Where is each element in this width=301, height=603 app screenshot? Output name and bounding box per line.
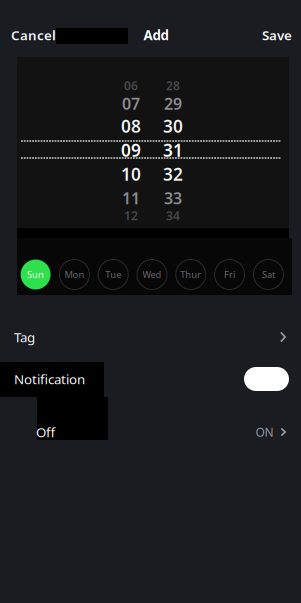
staticText: Tag: [14, 328, 35, 346]
staticText: ON: [255, 424, 273, 440]
staticText: 09: [121, 138, 141, 161]
button[interactable]: Wed: [132, 257, 171, 291]
staticText: Thur: [180, 268, 201, 281]
staticText: 07: [122, 93, 140, 114]
staticText: Cancel: [11, 26, 56, 44]
button[interactable]: Sat: [249, 257, 288, 291]
staticText: 34: [166, 207, 180, 223]
staticText: Wed: [142, 268, 161, 281]
staticText: 12: [124, 207, 138, 223]
staticText: 30: [163, 114, 183, 137]
button[interactable]: Notification: [244, 367, 289, 391]
button[interactable]: Tue: [94, 257, 133, 291]
button[interactable]: Cancel: [0, 24, 66, 46]
button[interactable]: Off: [0, 412, 301, 452]
staticText: Add: [143, 26, 168, 44]
staticText: 29: [164, 93, 182, 114]
staticText: 32: [163, 162, 183, 185]
staticText: 06: [124, 77, 138, 93]
staticText: 28: [166, 77, 180, 93]
button[interactable]: Sun: [16, 257, 55, 291]
staticText: 33: [164, 187, 182, 209]
button[interactable]: Tag: [0, 318, 301, 356]
staticText: Sat: [262, 268, 275, 281]
staticText: Tue: [105, 268, 121, 281]
staticText: Off: [36, 423, 55, 441]
staticText: 31: [163, 138, 183, 161]
staticText: 10: [121, 162, 141, 185]
staticText: Save: [262, 26, 292, 44]
button[interactable]: Thur: [171, 257, 210, 291]
staticText: Mon: [64, 268, 84, 281]
button[interactable]: Mon: [55, 257, 94, 291]
button[interactable]: Fri: [210, 257, 249, 291]
staticText: Sun: [27, 268, 44, 281]
staticText: Fri: [224, 268, 235, 281]
staticText: Notification: [14, 370, 85, 388]
button[interactable]: Save: [252, 24, 301, 46]
staticText: 11: [122, 187, 140, 209]
staticText: 08: [121, 114, 141, 137]
